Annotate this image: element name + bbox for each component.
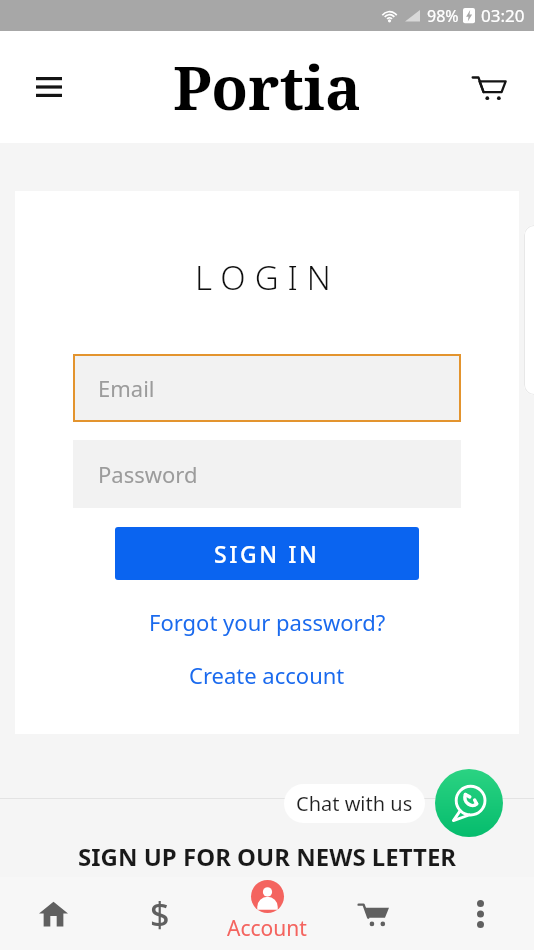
button[interactable]: Menu: [26, 64, 72, 110]
button[interactable]: Chat with us: [284, 784, 425, 823]
staticText: Email: [98, 373, 155, 403]
button[interactable]: Prices: [106, 877, 213, 950]
staticText: Create account: [189, 660, 345, 690]
button[interactable]: Cart: [320, 877, 427, 950]
button[interactable]: Account: [213, 877, 320, 950]
button[interactable]: More options: [427, 877, 534, 950]
staticText: SIGN UP FOR OUR NEWS LETTER: [78, 840, 457, 873]
staticText: $: [150, 891, 170, 937]
staticText: Chat with us: [296, 790, 413, 817]
button[interactable]: Password: [73, 440, 461, 508]
button[interactable]: Cart: [466, 64, 512, 110]
staticText: Forgot your password?: [149, 607, 386, 637]
button[interactable]: Email: [73, 354, 461, 422]
button[interactable]: Forgot your password?: [139, 602, 396, 642]
staticText: 98%: [427, 5, 459, 27]
staticText: 03:20: [481, 4, 525, 27]
staticText: Account: [227, 914, 307, 943]
staticText: LOGIN: [195, 255, 340, 300]
staticText: Portia: [173, 46, 361, 128]
staticText: Password: [98, 459, 198, 489]
button[interactable]: Home: [0, 877, 106, 950]
staticText: SIGN IN: [214, 538, 320, 569]
button[interactable]: SIGN IN: [115, 527, 419, 580]
button[interactable]: Create account: [179, 655, 355, 695]
button[interactable]: Chat on WhatsApp: [435, 769, 503, 837]
